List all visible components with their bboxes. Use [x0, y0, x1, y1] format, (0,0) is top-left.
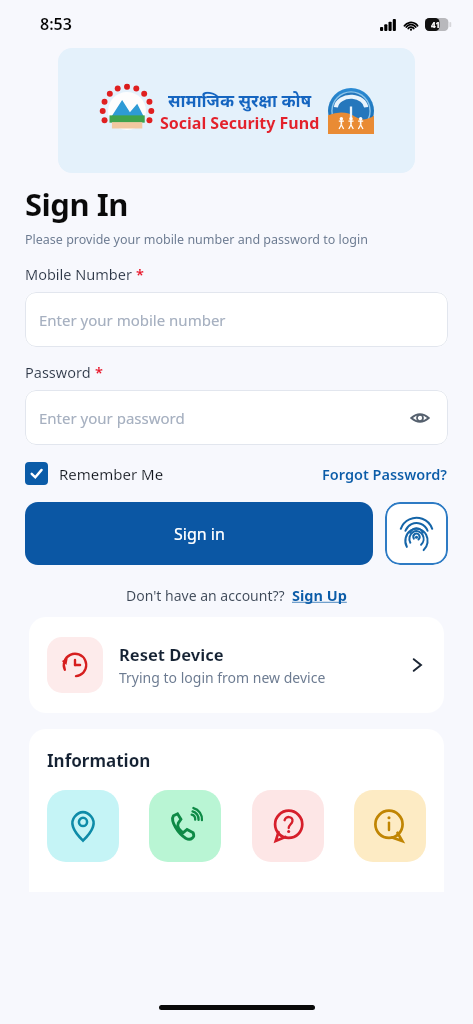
- staticText: *: [136, 264, 144, 284]
- staticText: Password: [25, 362, 91, 382]
- button[interactable]: Forgot Password?: [322, 464, 448, 484]
- staticText: Trying to login from new device: [119, 668, 326, 687]
- staticText: Information: [47, 749, 151, 772]
- button[interactable]: Fingerprint login: [385, 502, 448, 565]
- staticText: Don't have an account??: [126, 586, 285, 605]
- button[interactable]: Remember Me: [25, 462, 164, 485]
- staticText: Enter your mobile number: [39, 310, 226, 330]
- staticText: Sign in: [174, 523, 225, 545]
- button[interactable]: Call us: [149, 790, 221, 862]
- staticText: Remember Me: [59, 464, 164, 484]
- button[interactable]: Show password: [406, 404, 434, 432]
- staticText: Forgot Password?: [322, 464, 448, 484]
- button[interactable]: About: [354, 790, 426, 862]
- staticText: Mobile Number: [25, 264, 132, 284]
- button[interactable]: Enter your mobile number: [25, 292, 448, 347]
- staticText: 41: [431, 19, 441, 30]
- staticText: 8:53: [40, 13, 72, 35]
- button[interactable]: Sign Up: [292, 585, 347, 605]
- staticText: Sign In: [25, 183, 128, 225]
- button[interactable]: Sign in: [25, 502, 373, 565]
- button[interactable]: Location: [47, 790, 119, 862]
- button[interactable]: Help: [252, 790, 324, 862]
- button[interactable]: Reset Device: [29, 617, 444, 713]
- staticText: Social Security Fund: [160, 112, 320, 134]
- button[interactable]: Enter your password: [25, 390, 448, 445]
- staticText: Enter your password: [39, 408, 185, 428]
- staticText: Sign Up: [292, 585, 347, 605]
- staticText: Reset Device: [119, 643, 224, 665]
- staticText: *: [95, 362, 103, 382]
- staticText: सामाजिक सुरक्षा कोष: [168, 89, 312, 112]
- staticText: Please provide your mobile number and pa…: [25, 231, 369, 248]
